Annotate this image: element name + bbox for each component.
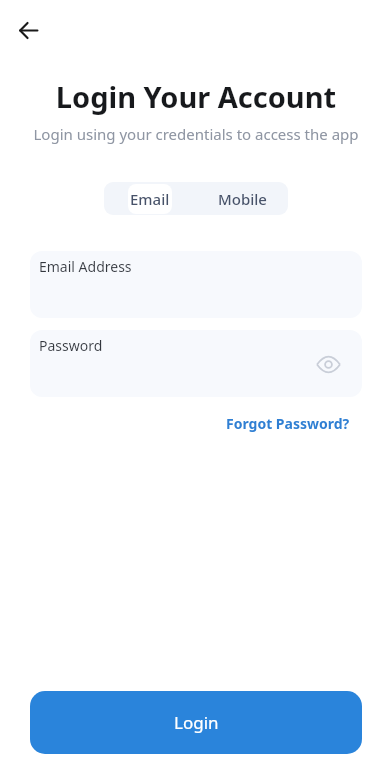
staticText: Login Your Account — [0, 77, 392, 116]
button[interactable]: Email Address — [30, 251, 362, 318]
staticText: Mobile — [218, 189, 267, 209]
button[interactable]: Mobile — [196, 182, 288, 215]
button[interactable]: Login — [30, 691, 362, 754]
staticText: Forgot Password? — [226, 414, 350, 433]
staticText: Login using your credentials to access t… — [0, 124, 392, 144]
staticText: Password — [39, 336, 103, 355]
button[interactable]: Password — [30, 330, 362, 397]
button[interactable]: Email — [104, 182, 196, 215]
button[interactable] — [316, 352, 340, 376]
button[interactable] — [8, 10, 48, 50]
staticText: Email Address — [39, 257, 132, 276]
staticText: Email — [130, 189, 170, 209]
button[interactable]: Forgot Password? — [226, 414, 350, 433]
staticText: Login — [174, 711, 219, 734]
